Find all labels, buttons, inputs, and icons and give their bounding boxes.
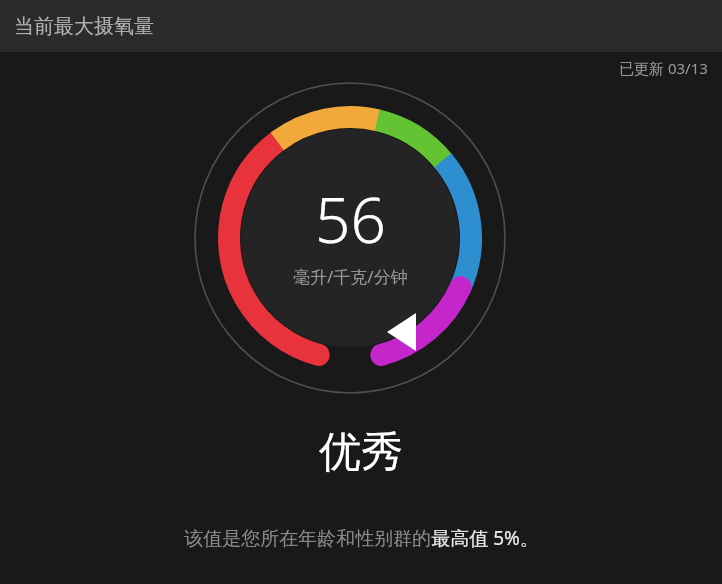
staticText: 56: [315, 177, 386, 261]
button[interactable]: 当前最大摄氧量 56: [190, 78, 510, 398]
staticText: 已更新 03/13: [619, 58, 708, 78]
staticText: 毫升/千克/分钟: [293, 265, 408, 288]
staticText: 该值是您所在年龄和性别群的最高值 5%。: [184, 525, 539, 551]
staticText: 当前最大摄氧量: [14, 14, 154, 39]
staticText: 优秀: [319, 426, 403, 479]
button[interactable]: 当前最大摄氧量: [0, 0, 722, 52]
